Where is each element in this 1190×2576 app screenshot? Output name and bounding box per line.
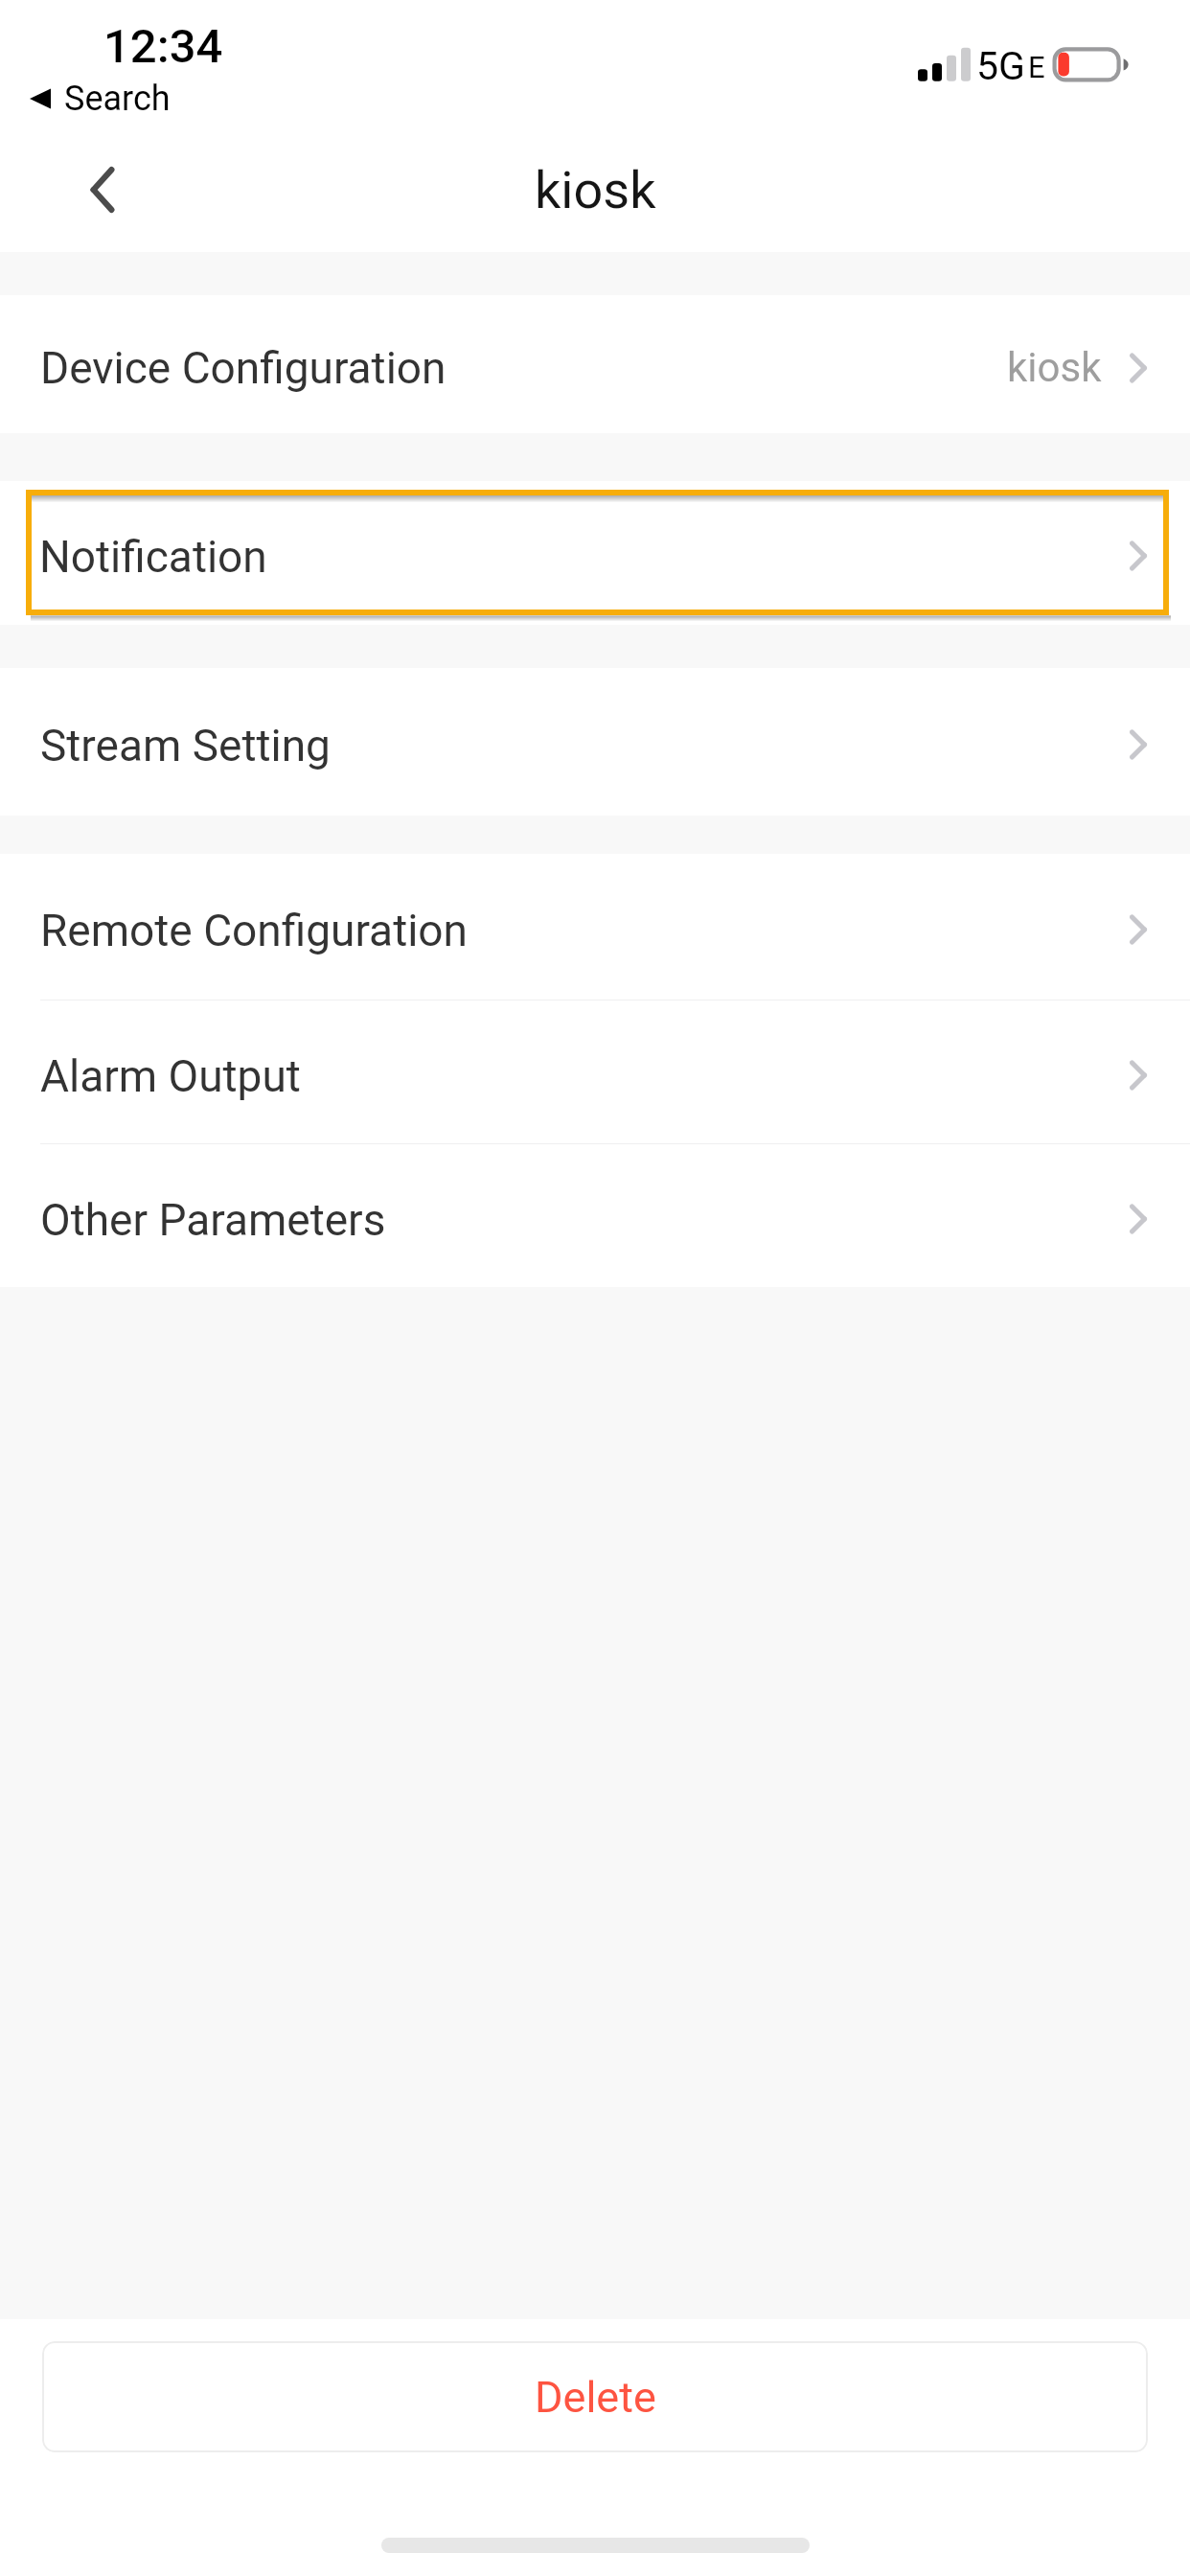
button[interactable]: Search	[30, 79, 171, 119]
staticText: Alarm Output	[40, 1050, 301, 1102]
button[interactable]: Delete	[42, 2341, 1148, 2452]
staticText: Delete	[535, 2372, 656, 2423]
button[interactable]: Stream Setting	[0, 668, 1190, 816]
staticText: Remote Configuration	[40, 905, 469, 956]
staticText: kiosk	[1007, 344, 1102, 391]
staticText: 5G	[976, 43, 1025, 89]
button[interactable]: Notification	[26, 490, 1169, 615]
button[interactable]: Other Parameters	[0, 1144, 1190, 1287]
staticText: kiosk	[535, 160, 656, 220]
button[interactable]: Device Configuration	[0, 295, 1190, 433]
staticText: Other Parameters	[40, 1194, 386, 1246]
staticText: Notification	[39, 531, 267, 583]
staticText: Search	[64, 79, 171, 119]
staticText: Stream Setting	[40, 720, 331, 771]
staticText: 12:34	[103, 19, 223, 74]
button[interactable]: Back	[59, 147, 146, 233]
staticText: E	[1028, 50, 1045, 84]
button[interactable]: Alarm Output	[0, 1000, 1190, 1143]
staticText: Device Configuration	[40, 342, 446, 394]
button[interactable]: Remote Configuration	[0, 854, 1190, 1000]
